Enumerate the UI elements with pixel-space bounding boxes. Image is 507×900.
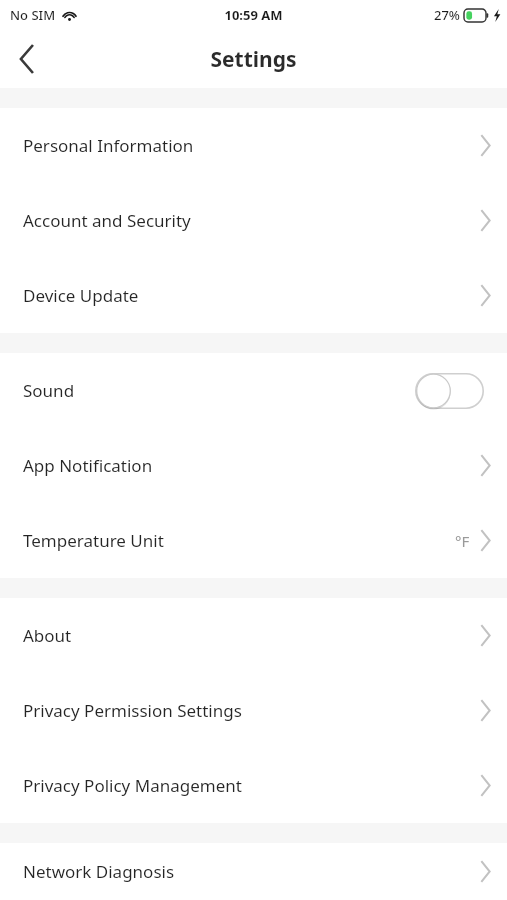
staticText: 27% <box>434 6 460 24</box>
button[interactable]: Personal Information <box>0 108 507 183</box>
staticText: 10:59 AM <box>224 6 283 24</box>
staticText: Device Update <box>23 284 139 307</box>
staticText: App Notification <box>23 454 153 477</box>
button[interactable]: Temperature Unit <box>0 503 507 578</box>
button[interactable]: Device Update <box>0 258 507 333</box>
staticText: Network Diagnosis <box>23 860 175 883</box>
button[interactable]: Privacy Permission Settings <box>0 673 507 748</box>
button[interactable]: About <box>0 598 507 673</box>
button[interactable]: Account and Security <box>0 183 507 258</box>
button[interactable]: Sound <box>0 353 507 428</box>
button[interactable]: Privacy Policy Management <box>0 748 507 823</box>
staticText: Settings <box>210 45 297 74</box>
staticText: Privacy Permission Settings <box>23 699 242 722</box>
button[interactable]: Network Diagnosis <box>0 843 507 900</box>
staticText: About <box>23 624 72 647</box>
staticText: °F <box>455 531 470 551</box>
button[interactable]: Back <box>0 32 54 86</box>
button[interactable]: App Notification <box>0 428 507 503</box>
staticText: No SIM <box>10 6 56 24</box>
staticText: Account and Security <box>23 209 191 232</box>
staticText: Personal Information <box>23 134 194 157</box>
staticText: Temperature Unit <box>23 529 164 552</box>
staticText: Sound <box>23 379 75 402</box>
button[interactable]: Sound toggle <box>415 373 484 409</box>
staticText: Privacy Policy Management <box>23 774 242 797</box>
